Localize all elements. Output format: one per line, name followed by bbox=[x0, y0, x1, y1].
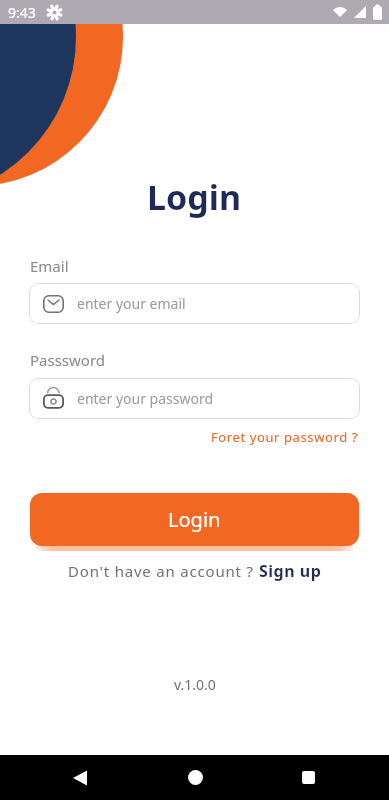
staticText: Don't have an account ? bbox=[68, 561, 259, 581]
staticText: Sign up bbox=[259, 560, 322, 582]
staticText: Login bbox=[168, 506, 221, 533]
staticText: enter your email bbox=[77, 294, 186, 313]
button[interactable]: enter your email bbox=[29, 283, 360, 324]
staticText: Login bbox=[147, 174, 242, 220]
staticText: Email bbox=[30, 256, 69, 276]
button[interactable]: Foret your password ? bbox=[211, 428, 358, 446]
button[interactable]: enter your password bbox=[29, 378, 360, 419]
button[interactable] bbox=[284, 755, 332, 800]
staticText: enter your password bbox=[77, 389, 214, 408]
staticText: Passsword bbox=[30, 350, 106, 370]
staticText: 9:43 bbox=[8, 3, 36, 22]
staticText: v.1.0.0 bbox=[174, 675, 216, 694]
button[interactable]: Login bbox=[30, 493, 359, 546]
button[interactable] bbox=[56, 755, 104, 800]
button[interactable]: Sign up bbox=[259, 560, 322, 582]
button[interactable] bbox=[171, 755, 219, 800]
